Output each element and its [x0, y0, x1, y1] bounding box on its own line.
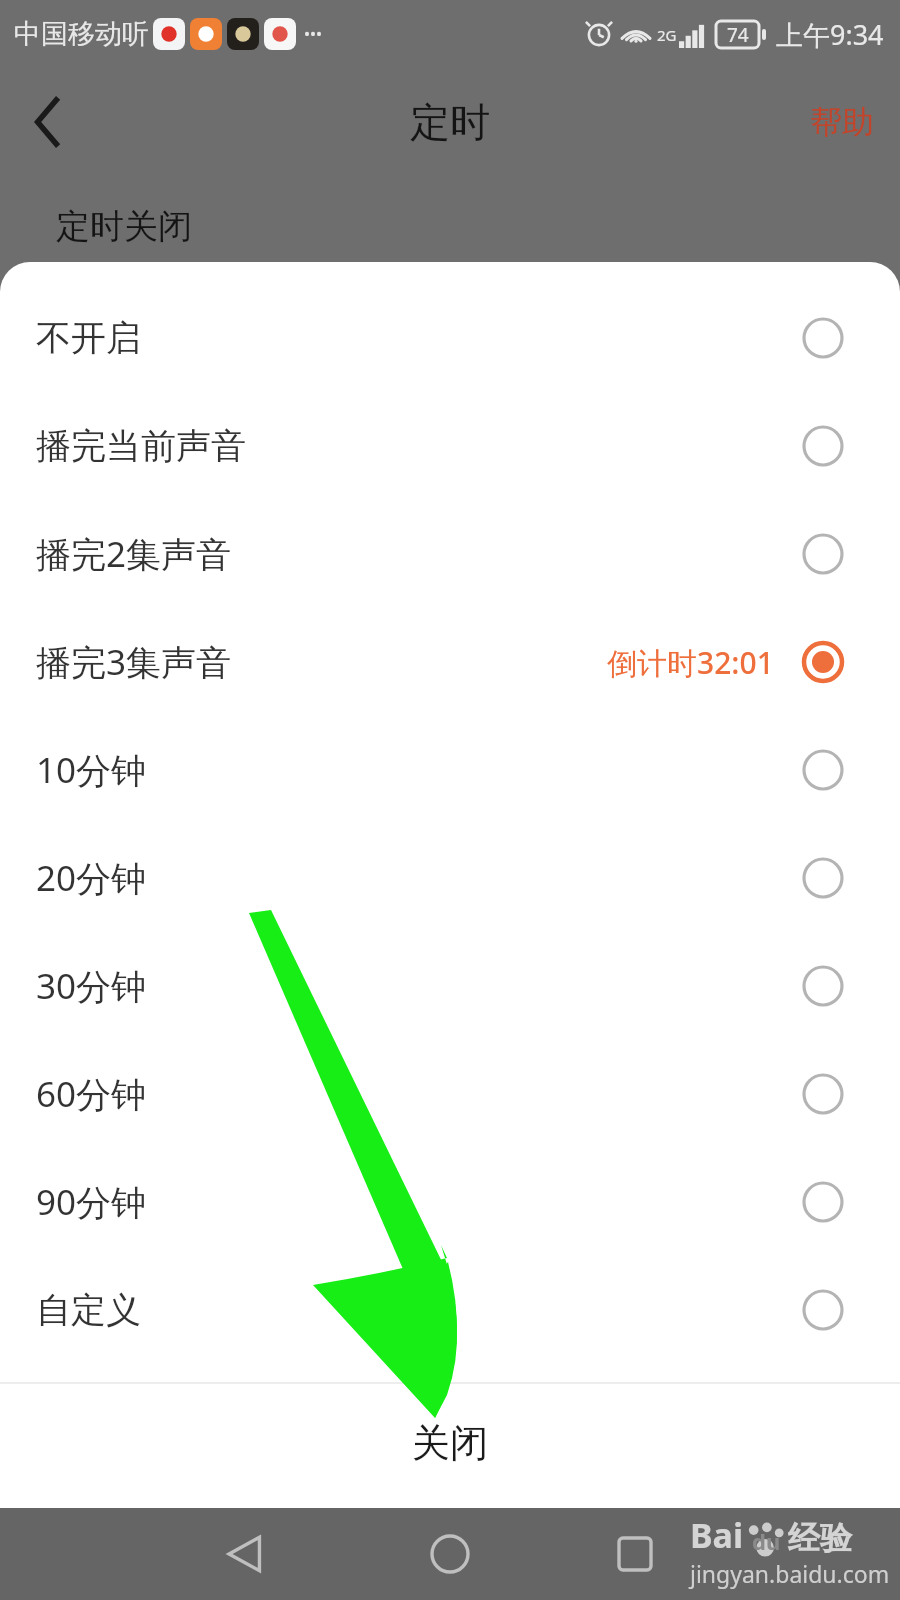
staticText: 定时	[410, 97, 490, 147]
button[interactable]: 90分钟	[0, 1148, 900, 1256]
button[interactable]: Home	[402, 1508, 498, 1600]
button[interactable]: 播完当前声音	[0, 392, 900, 500]
button[interactable]: Recents	[587, 1508, 683, 1600]
staticText: 2G	[657, 25, 677, 45]
staticText: 播完当前声音	[36, 424, 246, 468]
button[interactable]: 播完3集声音	[0, 608, 900, 716]
staticText: du	[752, 1526, 781, 1556]
staticText: 20分钟	[36, 854, 147, 902]
button[interactable]: Back	[197, 1508, 293, 1600]
staticText: 不开启	[36, 316, 141, 360]
staticText: 经验	[788, 1518, 852, 1558]
button[interactable]: 20分钟	[0, 824, 900, 932]
staticText: 播完3集声音	[36, 638, 232, 686]
staticText: 关闭	[412, 1419, 488, 1467]
staticText: •••	[304, 23, 323, 45]
button[interactable]: Back	[0, 74, 96, 170]
button[interactable]: 关闭	[0, 1384, 900, 1502]
staticText: 帮助	[810, 102, 874, 142]
staticText: Bai	[690, 1512, 744, 1558]
staticText: 10分钟	[36, 746, 147, 794]
staticText: 30分钟	[36, 962, 147, 1010]
staticText: 自定义	[36, 1288, 141, 1332]
staticText: 定时关闭	[56, 205, 192, 248]
button[interactable]: 不开启	[0, 284, 900, 392]
button[interactable]: 10分钟	[0, 716, 900, 824]
staticText: 中国移动听	[14, 17, 149, 51]
staticText: 60分钟	[36, 1070, 147, 1118]
button[interactable]: 播完2集声音	[0, 500, 900, 608]
staticText: jingyan.baidu.com	[690, 1558, 890, 1589]
staticText: 播完2集声音	[36, 530, 232, 578]
staticText: 74	[727, 22, 749, 48]
button[interactable]: 帮助	[784, 82, 900, 162]
staticText: 上午9:34	[776, 16, 884, 53]
button[interactable]: 自定义	[0, 1256, 900, 1364]
staticText: 90分钟	[36, 1178, 147, 1226]
staticText: 倒计时32:01	[607, 642, 774, 683]
button[interactable]: 60分钟	[0, 1040, 900, 1148]
button[interactable]: 30分钟	[0, 932, 900, 1040]
